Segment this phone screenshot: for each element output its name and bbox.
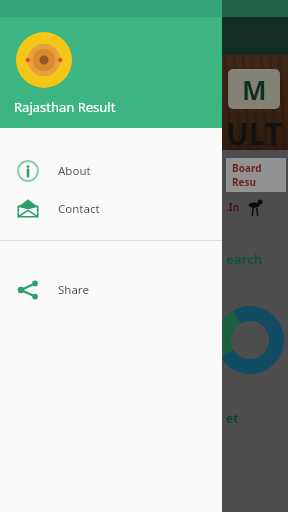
staticText: Board Resu — [232, 161, 286, 189]
other: Contact — [17, 198, 39, 220]
staticText: Share — [58, 282, 89, 298]
staticText: Contact — [58, 201, 100, 217]
staticText: About — [58, 163, 91, 179]
other: About — [17, 160, 39, 182]
button[interactable]: About — [0, 152, 222, 190]
staticText: .In — [226, 200, 240, 214]
button[interactable]: Share — [0, 271, 222, 309]
staticText: et — [226, 410, 239, 426]
staticText: Rajasthan Result — [14, 98, 116, 116]
staticText: earch — [226, 250, 263, 268]
button[interactable]: Contact — [0, 190, 222, 228]
staticText: M — [242, 72, 267, 107]
other: Share — [17, 279, 39, 301]
staticText: ULT — [226, 113, 283, 154]
